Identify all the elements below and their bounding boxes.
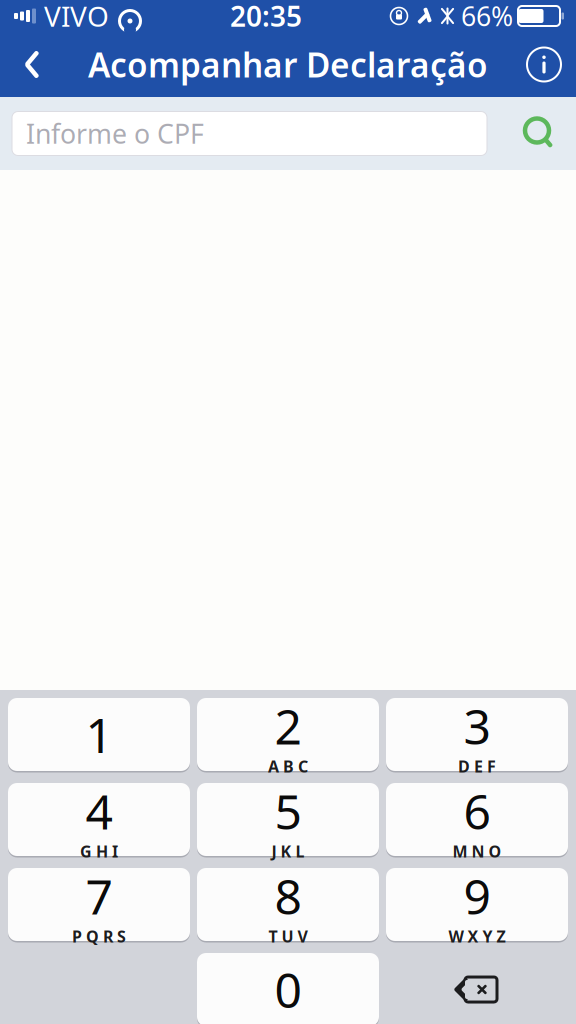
staticText: 8 (274, 864, 301, 928)
button[interactable]: 1 (8, 697, 190, 772)
button[interactable]: 4 (8, 782, 190, 857)
staticText: G H I (80, 841, 118, 862)
staticText: 1 (85, 703, 112, 766)
button[interactable]: Search (511, 105, 567, 161)
staticText: M N O (452, 841, 501, 862)
button[interactable]: 0 (197, 952, 379, 1024)
button[interactable]: 8 (197, 867, 379, 942)
button[interactable]: 2 (197, 697, 379, 772)
staticText: 4 (85, 779, 112, 843)
staticText: W X Y Z (448, 926, 505, 947)
staticText: P Q R S (72, 926, 126, 947)
staticText: 20:35 (230, 0, 302, 35)
staticText: 9 (463, 864, 490, 928)
staticText: Informe o CPF (26, 116, 204, 151)
button[interactable]: 7 (8, 867, 190, 942)
button[interactable]: Informe o CPF (12, 111, 487, 155)
staticText: 5 (274, 779, 301, 843)
staticText: J K L (271, 841, 304, 862)
staticText: A B C (268, 756, 308, 777)
staticText: T U V (268, 926, 307, 947)
button[interactable]: 3 (386, 697, 568, 772)
staticText: 6 (463, 779, 490, 843)
button[interactable]: Back (0, 32, 64, 97)
staticText: VIVO (44, 0, 109, 35)
staticText: 3 (463, 694, 490, 758)
button[interactable]: 9 (386, 867, 568, 942)
staticText: 0 (274, 958, 301, 1021)
button[interactable]: Delete (386, 953, 568, 1024)
staticText: Acompanhar Declaração (88, 42, 488, 87)
staticText: 7 (85, 864, 112, 928)
staticText: 66% (461, 0, 513, 34)
button[interactable]: 5 (197, 782, 379, 857)
staticText: 2 (274, 694, 301, 758)
button[interactable]: 6 (386, 782, 568, 857)
button[interactable]: Information (512, 32, 576, 97)
staticText: D E F (458, 756, 496, 777)
